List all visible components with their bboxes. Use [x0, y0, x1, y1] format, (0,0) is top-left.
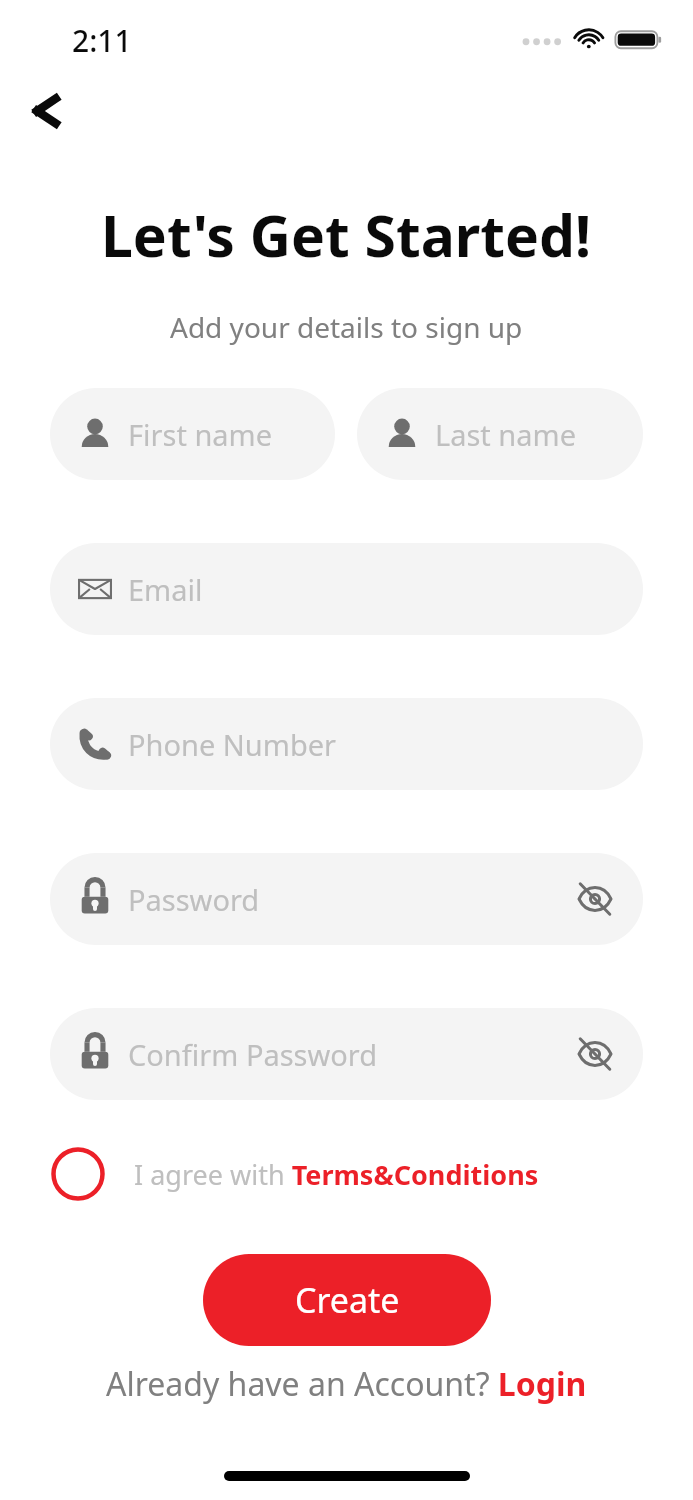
button[interactable]: Back — [18, 88, 64, 134]
staticText: Email — [128, 570, 203, 609]
staticText: Confirm Password — [128, 1035, 378, 1074]
button[interactable]: Confirm Password — [50, 1008, 643, 1100]
button[interactable]: Password — [50, 853, 643, 945]
button[interactable]: Email — [50, 543, 643, 635]
button[interactable]: Show password — [573, 1032, 617, 1076]
button[interactable]: Phone Number — [50, 698, 643, 790]
staticText: I agree with Terms&Conditions — [134, 1156, 539, 1193]
staticText: Add your details to sign up — [170, 308, 523, 346]
staticText: Let's Get Started! — [101, 196, 592, 274]
staticText: Phone Number — [128, 725, 337, 764]
button[interactable]: I agree with Terms&Conditions — [50, 1146, 643, 1202]
staticText: First name — [128, 415, 273, 454]
button[interactable]: Create — [203, 1254, 491, 1346]
staticText: 2:11 — [72, 20, 132, 61]
staticText: Password — [128, 880, 260, 919]
button[interactable]: Already have an Account? Login — [106, 1362, 587, 1406]
button[interactable]: Last name — [357, 388, 643, 480]
staticText: Create — [295, 1277, 400, 1323]
button[interactable]: Show password — [573, 877, 617, 921]
button[interactable]: First name — [50, 388, 335, 480]
staticText: Last name — [435, 415, 577, 454]
staticText: Already have an Account? Login — [106, 1362, 587, 1406]
